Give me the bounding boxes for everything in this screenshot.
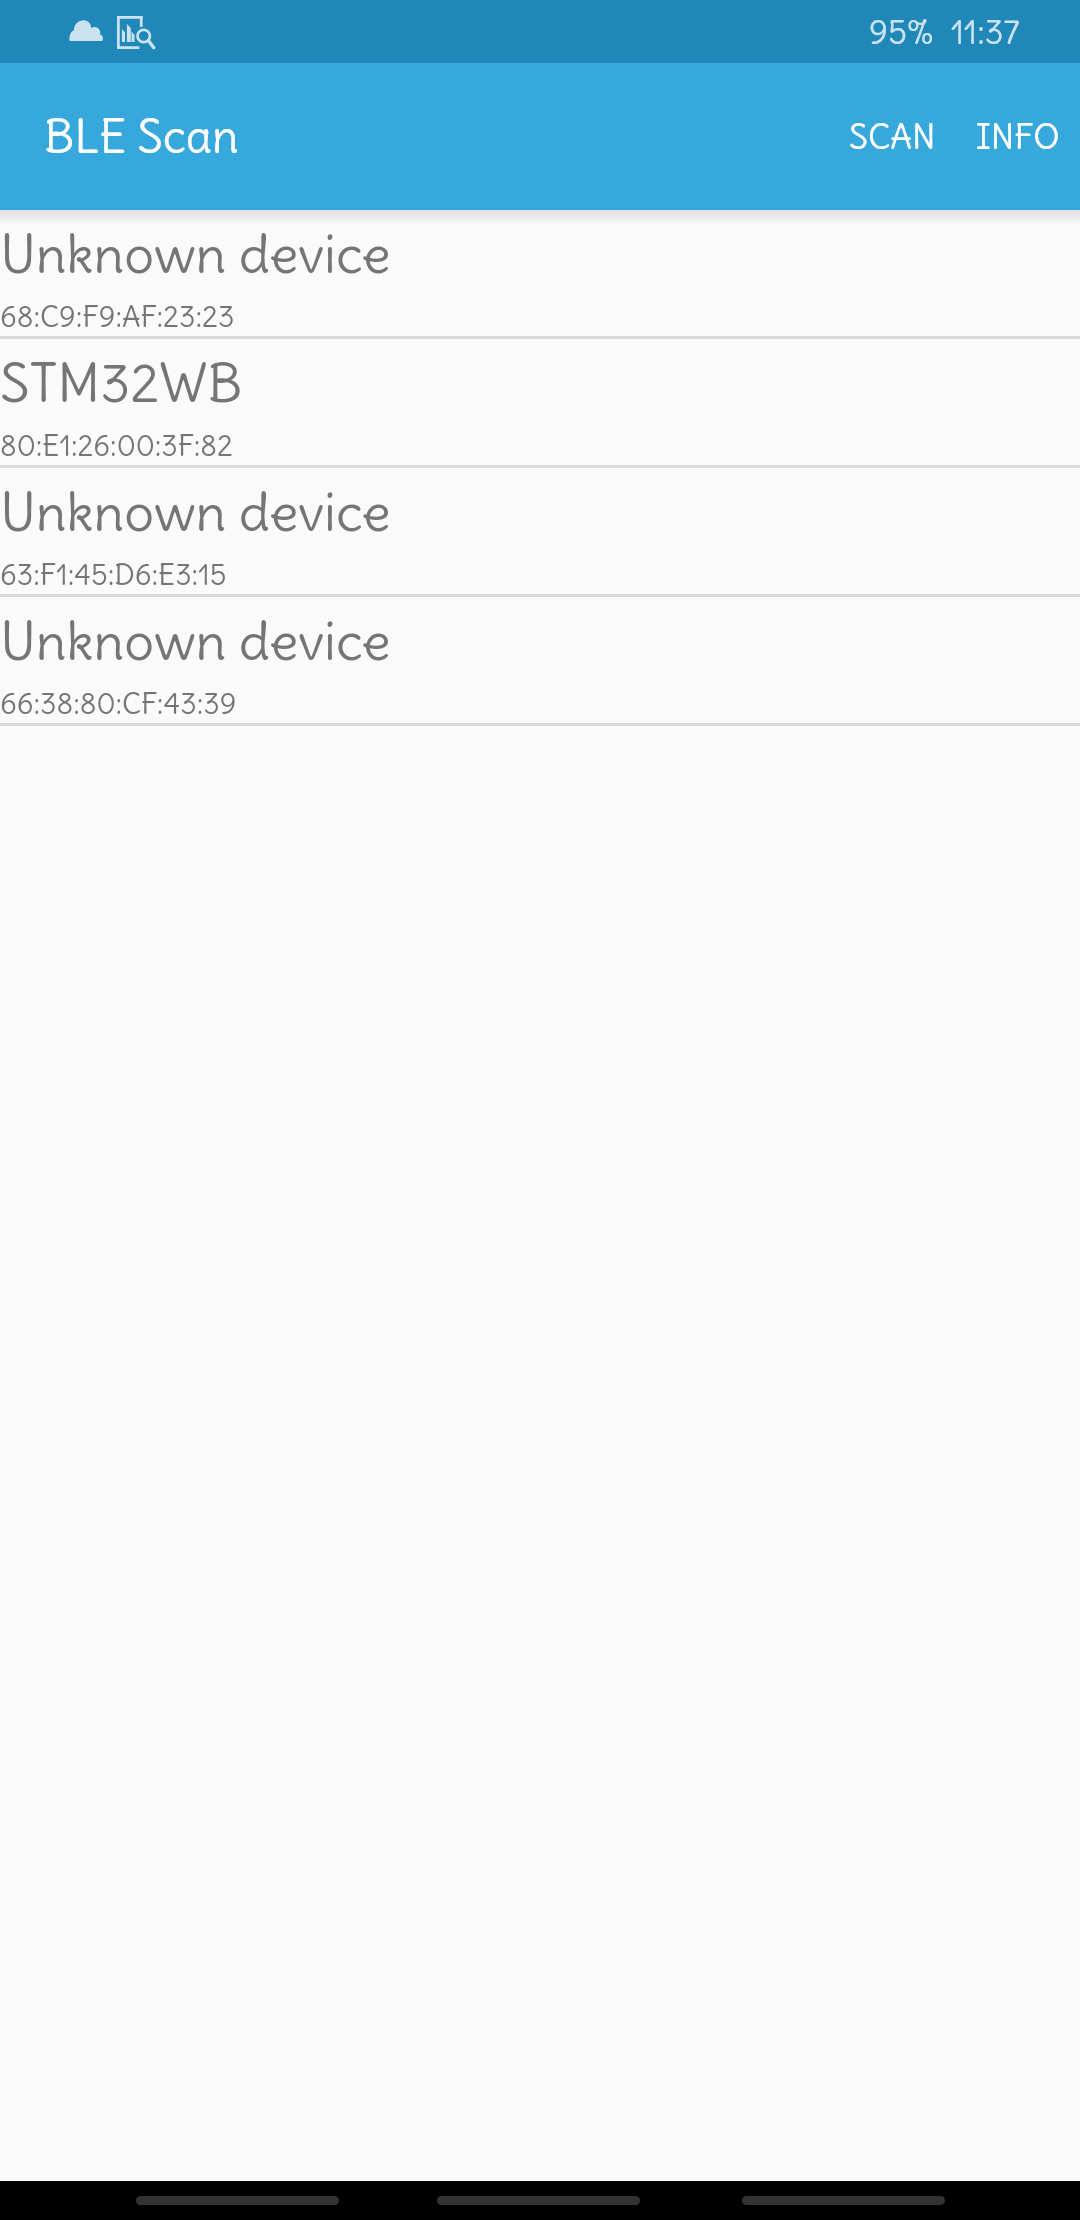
staticText: 66:38:80:CF:43:39 [0, 685, 237, 721]
staticText: Unknown device [0, 221, 391, 288]
staticText: 68:C9:F9:AF:23:23 [0, 298, 235, 334]
button[interactable]: Home [437, 2196, 640, 2205]
staticText: 80:E1:26:00:3F:82 [0, 427, 233, 463]
staticText: 95% [869, 11, 934, 52]
button[interactable]: Back [136, 2196, 339, 2205]
button[interactable]: Unknown device [0, 597, 1080, 726]
staticText: 11:37 [951, 11, 1020, 52]
staticText: STM32WB [0, 350, 243, 417]
button[interactable]: SCAN [819, 89, 954, 184]
staticText: 63:F1:45:D6:E3:15 [0, 556, 227, 592]
button[interactable]: STM32WB [0, 339, 1080, 468]
button[interactable]: INFO [954, 89, 1080, 184]
staticText: Unknown device [0, 479, 391, 546]
button[interactable]: Recents [742, 2196, 945, 2205]
staticText: SCAN [849, 115, 936, 158]
other: Cloud sync [69, 21, 103, 41]
other: Scan report [117, 16, 154, 49]
staticText: BLE Scan [44, 108, 239, 166]
button[interactable]: Unknown device [0, 210, 1080, 339]
staticText: INFO [976, 115, 1060, 158]
button[interactable]: Unknown device [0, 468, 1080, 597]
staticText: Unknown device [0, 608, 391, 675]
